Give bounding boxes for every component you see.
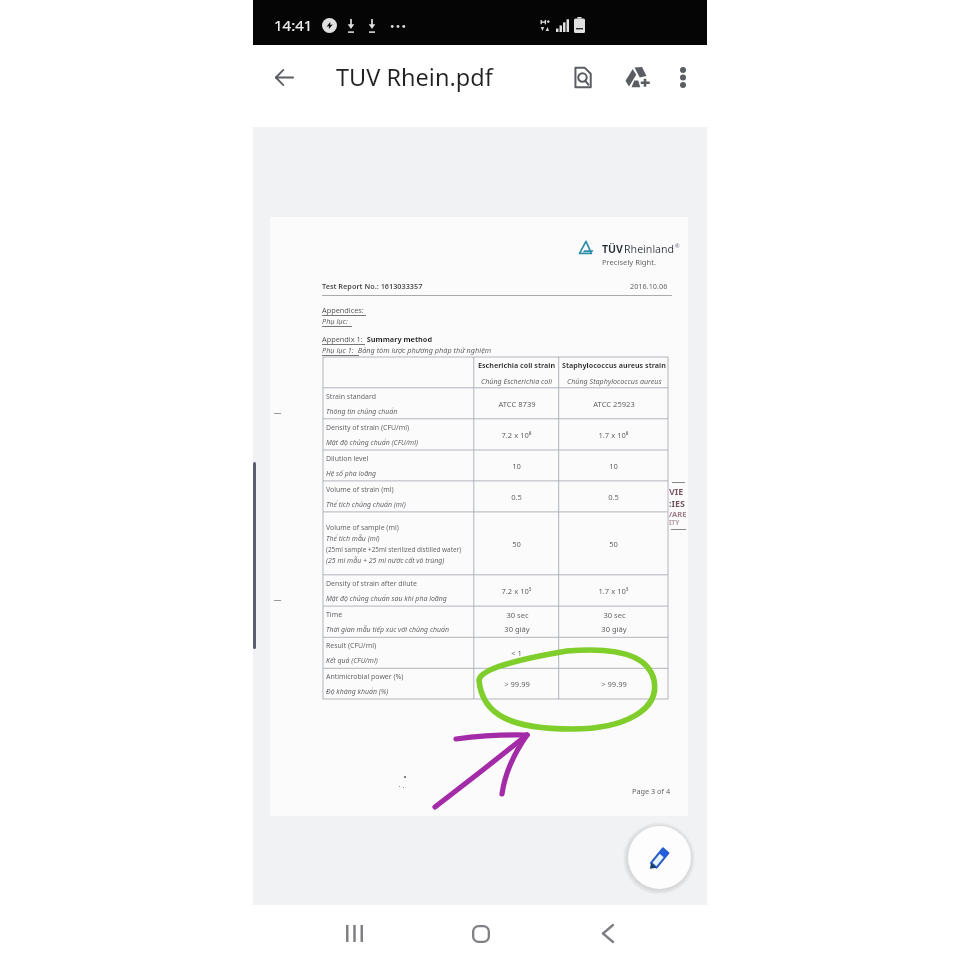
staticText: 1.7 x 10⁵ xyxy=(598,586,629,596)
staticText: Mật độ chủng chuẩn sau khi pha loãng xyxy=(326,594,447,603)
staticText: 50 xyxy=(512,539,521,549)
staticText: :IES xyxy=(669,497,686,509)
staticText: Density of strain after dilute xyxy=(326,579,417,588)
button[interactable]: Edit xyxy=(628,826,691,889)
staticText: (25 ml mẫu + 25 ml nước cất vô trùng) xyxy=(326,556,445,565)
staticText: 14:41 xyxy=(274,15,313,35)
button[interactable]: Back xyxy=(580,906,636,960)
staticText: Page 3 of 4 xyxy=(632,786,671,796)
staticText: > 99.99 xyxy=(504,679,530,689)
staticText: Appendix 1: xyxy=(322,334,363,344)
staticText: Summary method xyxy=(363,334,433,344)
staticText: 10 xyxy=(512,461,521,471)
staticText: ITY xyxy=(669,518,680,527)
staticText: < 1 xyxy=(511,648,522,658)
button[interactable]: Find in document xyxy=(560,54,606,100)
staticText: (25ml sample +25ml sterilized distilled … xyxy=(326,545,462,554)
staticText: Precisely Right. xyxy=(602,257,657,267)
staticText: Độ kháng khuẩn (%) xyxy=(326,687,389,696)
staticText: ® xyxy=(675,242,680,249)
staticText: Antimicrobial power (%) xyxy=(326,672,404,681)
staticText: 30 sec xyxy=(603,610,626,620)
staticText: Appendices: xyxy=(322,305,364,315)
staticText: TÜV xyxy=(602,242,624,256)
staticText: ATCC 25923 xyxy=(593,399,635,409)
button[interactable]: Add to Drive xyxy=(614,54,660,100)
staticText: Chủng Staphylococcus aureus xyxy=(567,376,662,386)
staticText: 0.5 xyxy=(608,492,619,502)
staticText: Density of strain (CFU/ml) xyxy=(326,423,410,432)
staticText: 0.5 xyxy=(511,492,522,502)
staticText: Phụ lục: xyxy=(322,316,348,326)
staticText: 50 xyxy=(609,539,618,549)
staticText: Thông tin chủng chuẩn xyxy=(326,407,398,416)
staticText: 7.2 x 10⁵ xyxy=(501,586,532,596)
staticText: /ARE xyxy=(669,509,687,519)
button[interactable]: Recent apps xyxy=(326,906,382,960)
staticText: Chủng Escherichia coli xyxy=(481,376,553,386)
staticText: Thể tích mẫu (ml) xyxy=(326,534,380,543)
staticText: Dilution level xyxy=(326,454,369,463)
staticText: Kết quả (CFU/ml) xyxy=(326,656,378,665)
staticText: Volume of sample (ml) xyxy=(326,523,399,532)
staticText: Bảng tóm lược phương pháp thử nghiệm xyxy=(354,345,492,355)
staticText: Rheinland xyxy=(624,242,675,256)
staticText: 2016.10.06 xyxy=(630,281,668,291)
staticText: 30 giây xyxy=(601,624,627,634)
staticText: Thời gian mẫu tiếp xúc với chủng chuẩn xyxy=(326,625,450,634)
staticText: Strain standard xyxy=(326,392,376,401)
staticText: > 99.99 xyxy=(601,679,627,689)
staticText: Result (CFU/ml) xyxy=(326,641,377,650)
staticText: Staphylococcus aureus strain xyxy=(562,360,666,370)
staticText: Thể tích chủng chuẩn (ml) xyxy=(326,500,406,509)
staticText: 7.2 x 10⁸ xyxy=(501,430,532,440)
staticText: 1.7 x 10⁸ xyxy=(598,430,629,440)
staticText: VIE xyxy=(669,485,684,497)
staticText: Time xyxy=(326,610,343,619)
staticText: 30 sec xyxy=(506,610,529,620)
staticText: Test Report No.: 1613033357 xyxy=(322,281,423,291)
staticText: Hệ số pha loãng xyxy=(326,469,377,478)
staticText: 30 giây xyxy=(504,624,530,634)
staticText: Escherichia coli strain xyxy=(478,360,556,370)
staticText: TUV Rhein.pdf xyxy=(336,61,493,93)
staticText: Phụ lục 1: xyxy=(322,345,354,355)
button[interactable]: Home xyxy=(453,906,509,960)
staticText: 10 xyxy=(609,461,618,471)
staticText: Mật độ chủng chuẩn (CFU/ml) xyxy=(326,438,418,447)
staticText: ATCC 8739 xyxy=(498,399,536,409)
staticText: Volume of strain (ml) xyxy=(326,485,394,494)
button[interactable]: Back xyxy=(259,52,309,102)
button[interactable]: More options xyxy=(660,54,706,100)
